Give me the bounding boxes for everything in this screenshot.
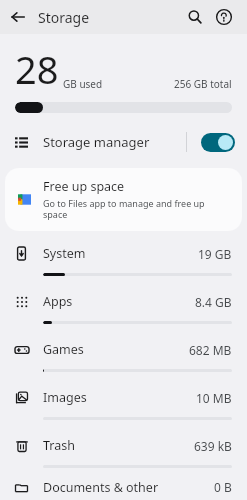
button[interactable]: Trash — [0, 426, 247, 474]
button[interactable]: System — [0, 234, 247, 282]
staticText: Games — [43, 341, 84, 358]
staticText: 682 MB — [189, 342, 232, 358]
button[interactable]: Apps — [0, 282, 247, 330]
button[interactable]: Images — [0, 378, 247, 426]
staticText: Go to Files app to manage and free up sp… — [43, 197, 220, 221]
staticText: Documents & other — [43, 479, 159, 496]
staticText: Apps — [43, 293, 73, 310]
button[interactable]: Free up space — [5, 168, 242, 231]
button[interactable]: Storage manager toggle — [201, 133, 235, 152]
staticText: Storage — [38, 8, 90, 27]
staticText: 256 GB total — [174, 77, 232, 91]
button[interactable]: Documents & other — [0, 474, 247, 500]
button[interactable]: Help — [212, 5, 236, 29]
staticText: 8.4 GB — [195, 294, 232, 310]
button[interactable]: Back — [6, 5, 30, 29]
staticText: Free up space — [43, 178, 125, 195]
button[interactable]: Storage manager — [0, 125, 247, 159]
staticText: 0 B — [214, 479, 232, 495]
staticText: GB used — [63, 77, 103, 91]
staticText: 19 GB — [198, 246, 232, 262]
staticText: Storage manager — [43, 133, 150, 151]
staticText: 10 MB — [196, 390, 232, 406]
staticText: 28 — [15, 43, 59, 95]
staticText: Images — [43, 389, 87, 406]
staticText: 639 kB — [194, 438, 232, 454]
button[interactable]: Search — [183, 5, 207, 29]
staticText: System — [43, 245, 86, 262]
button[interactable]: Games — [0, 330, 247, 378]
staticText: Trash — [43, 437, 75, 454]
